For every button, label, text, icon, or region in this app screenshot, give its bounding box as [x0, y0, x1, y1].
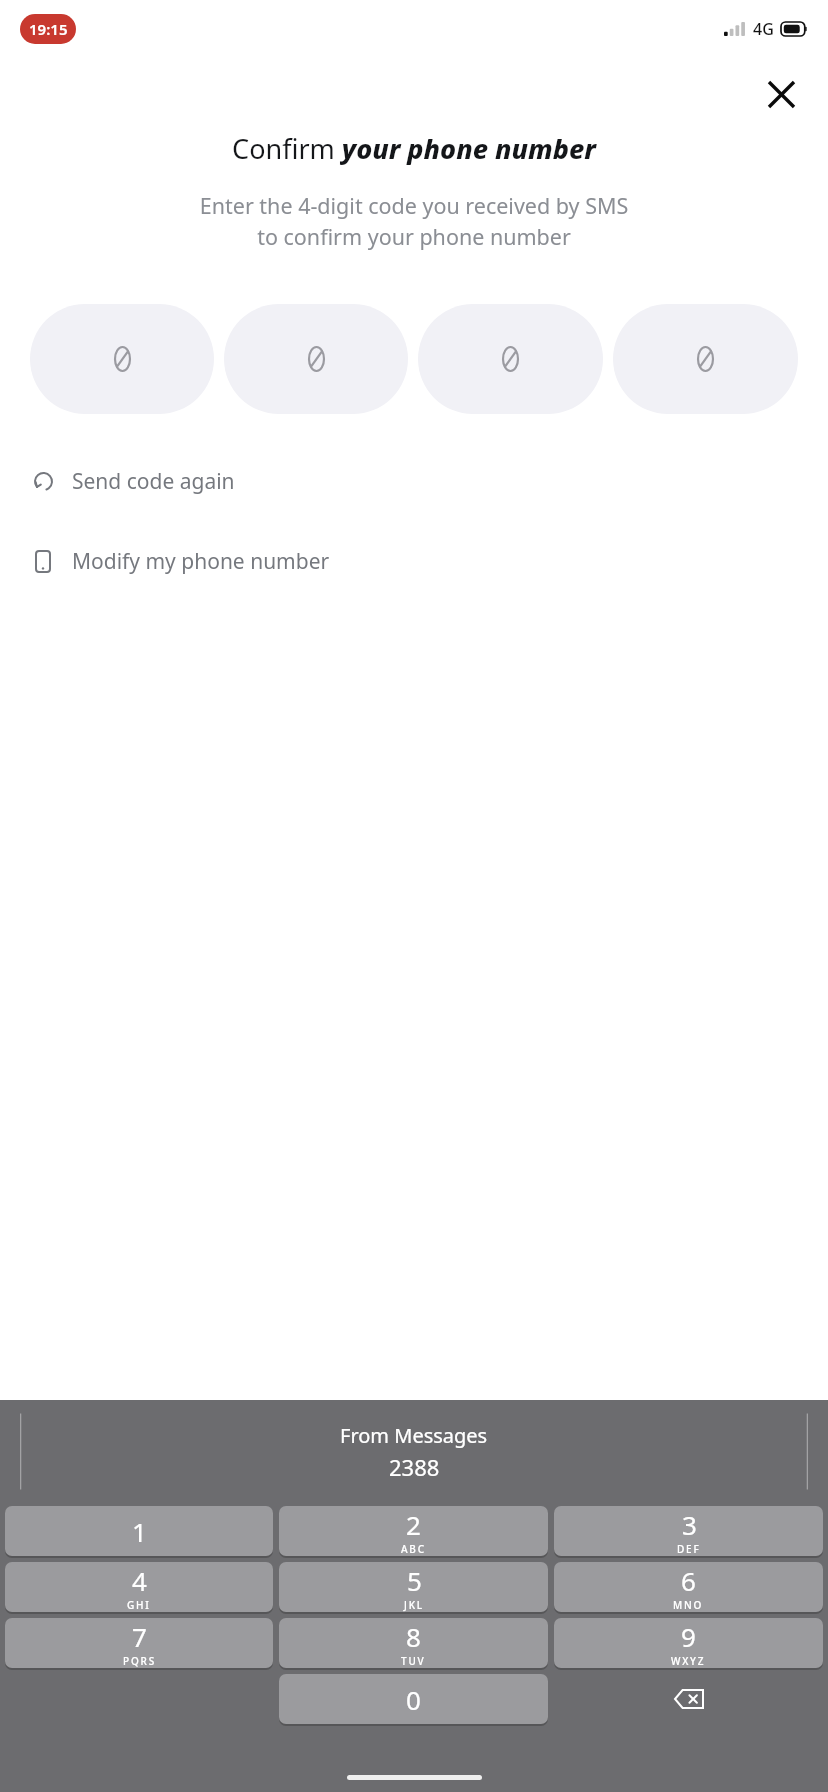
- button[interactable]: Digit field: [30, 304, 214, 414]
- staticText: Confirm your phone number: [20, 130, 808, 167]
- button[interactable]: 0: [279, 1674, 548, 1724]
- button[interactable]: Delete: [554, 1671, 823, 1727]
- staticText: Send code again: [72, 467, 235, 496]
- staticText: GHI: [127, 1598, 151, 1612]
- staticText: DEF: [677, 1542, 701, 1556]
- staticText: TUV: [401, 1654, 426, 1668]
- staticText: 6: [681, 1563, 696, 1598]
- button[interactable]: 3: [554, 1506, 823, 1556]
- staticText: 2: [406, 1507, 421, 1542]
- staticText: 8: [406, 1619, 421, 1654]
- staticText: 0: [406, 1682, 421, 1717]
- staticText: 3: [682, 1507, 697, 1542]
- staticText: JKL: [404, 1598, 424, 1612]
- staticText: 2388: [389, 1452, 440, 1482]
- button[interactable]: 1: [5, 1506, 273, 1556]
- staticText: 5: [407, 1563, 422, 1598]
- button[interactable]: 8: [279, 1618, 548, 1668]
- button[interactable]: Digit field: [224, 304, 408, 414]
- staticText: 19:15: [29, 19, 68, 39]
- staticText: 4: [132, 1563, 147, 1598]
- button[interactable]: 5: [279, 1562, 548, 1612]
- staticText: MNO: [673, 1598, 704, 1612]
- button[interactable]: 7: [5, 1618, 273, 1668]
- staticText: PQRS: [123, 1654, 156, 1668]
- staticText: 1: [132, 1514, 147, 1549]
- staticText: From Messages: [340, 1422, 488, 1449]
- staticText: ABC: [401, 1542, 426, 1556]
- button[interactable]: 4: [5, 1562, 273, 1612]
- button[interactable]: 6: [554, 1562, 823, 1612]
- staticText: 7: [132, 1619, 147, 1654]
- button[interactable]: Digit field: [613, 304, 798, 414]
- button[interactable]: Modify my phone number: [26, 538, 802, 584]
- staticText: WXYZ: [671, 1654, 706, 1668]
- button[interactable]: Digit field: [418, 304, 603, 414]
- button[interactable]: 2: [279, 1506, 548, 1556]
- staticText: 4G: [753, 18, 774, 40]
- staticText: Enter the 4-digit code you received by S…: [20, 191, 808, 252]
- staticText: 9: [681, 1619, 696, 1654]
- button[interactable]: 9: [554, 1618, 823, 1668]
- button[interactable]: Send code again: [26, 458, 802, 504]
- staticText: Modify my phone number: [72, 547, 330, 576]
- button[interactable]: Close: [756, 69, 806, 119]
